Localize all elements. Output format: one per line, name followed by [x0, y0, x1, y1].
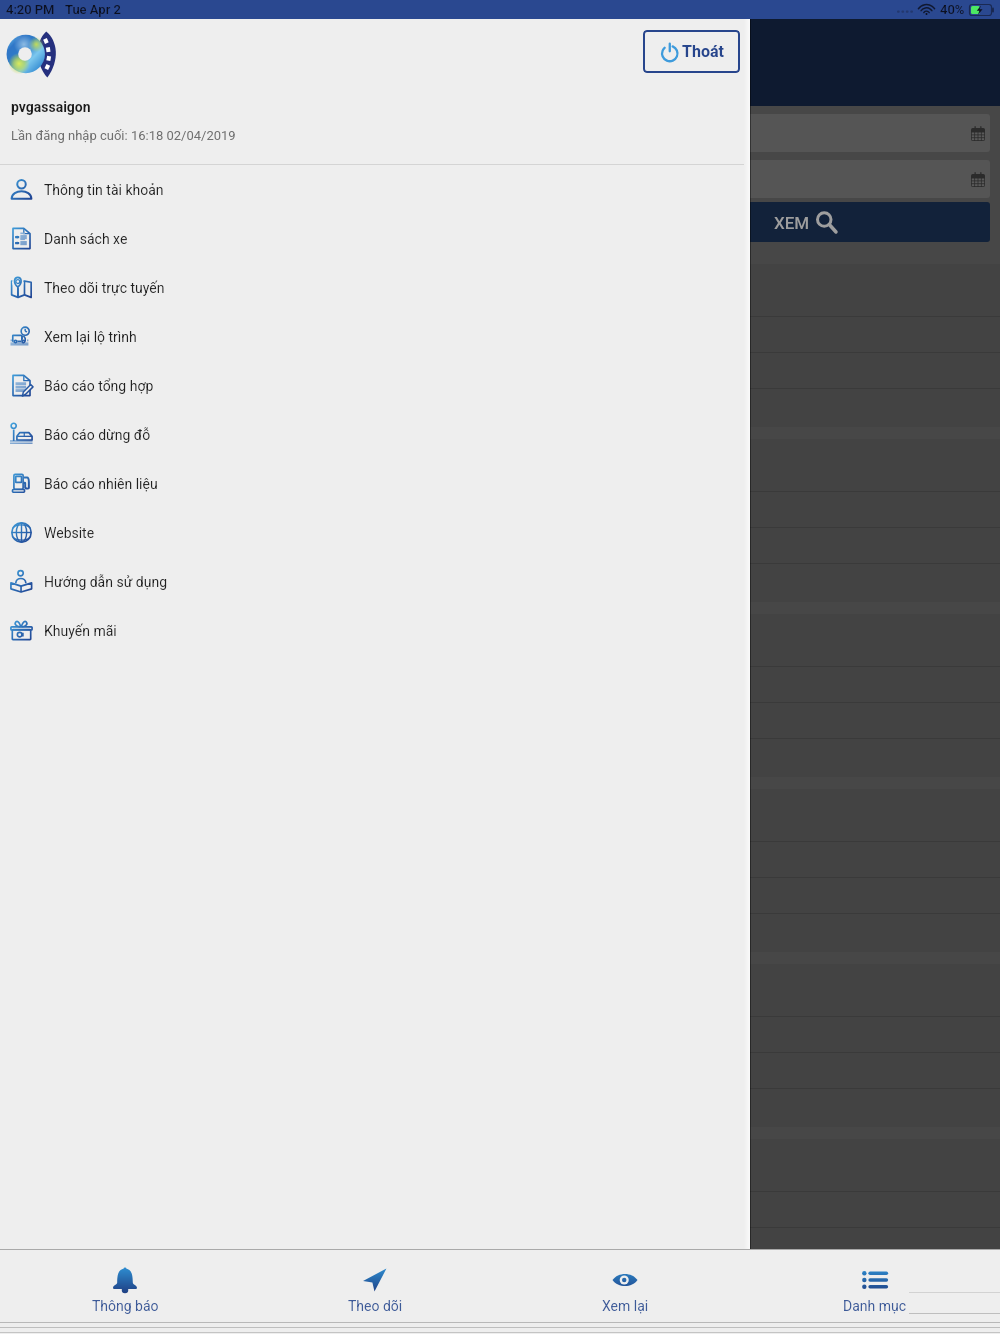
button[interactable]: Hướng dẫn sử dụng [0, 557, 750, 606]
staticText: Thông tin tài khoản [44, 182, 164, 198]
staticText: Thông báo [92, 1298, 159, 1314]
button[interactable]: Xem lại [500, 1250, 750, 1322]
staticText: Danh sách xe [44, 231, 128, 247]
button[interactable]: Danh sách xe [0, 214, 750, 263]
staticText: pvgassaigon [11, 99, 91, 115]
button[interactable]: Thông báo [0, 1250, 250, 1322]
staticText: Danh mục [843, 1298, 907, 1314]
button[interactable]: Thông tin tài khoản [0, 165, 750, 214]
button[interactable]: Báo cáo tổng hợp [0, 361, 750, 410]
button[interactable]: Chọn ngày bắt đầu [622, 114, 990, 152]
staticText: XEM [774, 213, 810, 233]
button[interactable]: Theo dõi trực tuyến [0, 263, 750, 312]
staticText: Xem lại lộ trình [44, 329, 137, 345]
button[interactable]: Chọn ngày kết thúc [622, 160, 990, 198]
staticText: 40% [940, 2, 965, 17]
staticText: Theo dõi trực tuyến [44, 280, 165, 296]
button[interactable]: Thoát [643, 30, 740, 73]
staticText: Xem lại [602, 1298, 649, 1314]
button[interactable]: Theo dõi [250, 1250, 500, 1322]
staticText: Thoát [682, 42, 724, 61]
button[interactable]: Danh mục [750, 1250, 1000, 1322]
staticText: Khuyến mãi [44, 623, 117, 639]
staticText: 4:20 PM [6, 2, 55, 17]
staticText: Báo cáo nhiên liệu [44, 476, 158, 492]
staticText: Website [44, 525, 95, 541]
staticText: Lần đăng nhập cuối: 16:18 02/04/2019 [11, 128, 236, 143]
staticText: Hướng dẫn sử dụng [44, 574, 167, 590]
staticText: Tue Apr 2 [65, 2, 121, 17]
staticText: Báo cáo tổng hợp [44, 378, 154, 394]
button[interactable]: Xem lại lộ trình [0, 312, 750, 361]
button[interactable]: Website [0, 508, 750, 557]
button[interactable]: Báo cáo nhiên liệu [0, 459, 750, 508]
button[interactable]: Báo cáo dừng đỗ [0, 410, 750, 459]
button[interactable]: XEM [622, 202, 990, 242]
staticText: Báo cáo dừng đỗ [44, 427, 151, 443]
staticText: Theo dõi [348, 1298, 403, 1314]
other: TTAS logo [7, 30, 63, 78]
button[interactable]: Khuyến mãi [0, 606, 750, 655]
